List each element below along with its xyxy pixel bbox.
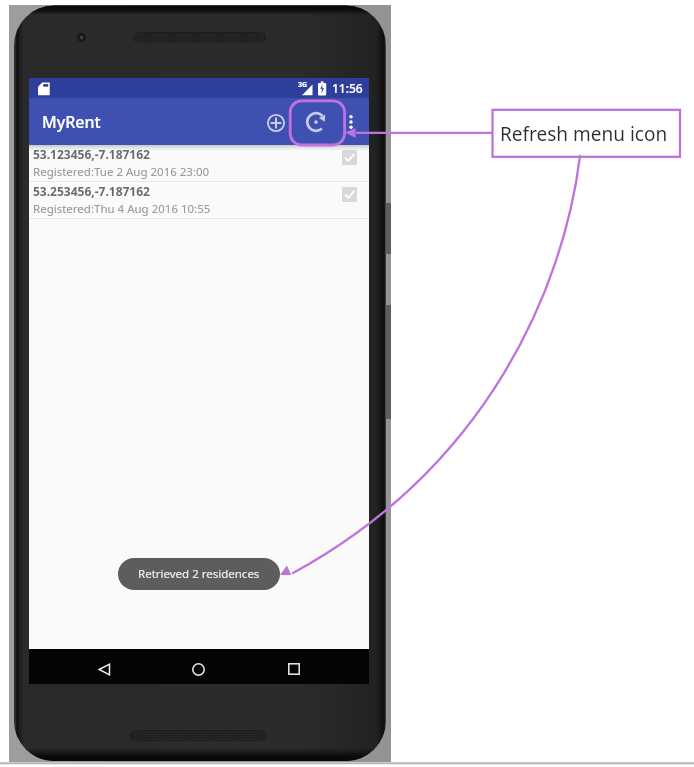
button[interactable]: 53.253456,-7.187162: [29, 182, 369, 218]
staticText: Refresh menu icon: [500, 121, 668, 147]
staticText: Registered:Tue 2 Aug 2016 23:00: [33, 164, 210, 180]
staticText: Registered:Thu 4 Aug 2016 10:55: [33, 201, 211, 217]
button[interactable]: Refresh menu icon: [493, 110, 681, 157]
staticText: MyRent: [42, 111, 101, 133]
staticText: Retrieved 2 residences: [138, 566, 260, 582]
button[interactable]: More options: [343, 104, 359, 140]
button[interactable]: 53.123456,-7.187162: [29, 145, 369, 181]
button[interactable]: Recents: [280, 655, 308, 683]
button[interactable]: Retrieved 2 residences: [118, 558, 280, 590]
button[interactable]: Home: [184, 655, 212, 683]
button[interactable]: Favourite: [342, 150, 357, 165]
button[interactable]: Refresh: [298, 104, 334, 140]
button[interactable]: Back: [90, 655, 118, 683]
staticText: 53.253456,-7.187162: [33, 183, 150, 199]
button[interactable]: Add residence: [258, 105, 294, 141]
staticText: 53.123456,-7.187162: [33, 146, 150, 162]
button[interactable]: Favourite: [342, 187, 357, 202]
staticText: 11:56: [332, 80, 363, 96]
staticText: 3G: [298, 80, 308, 90]
